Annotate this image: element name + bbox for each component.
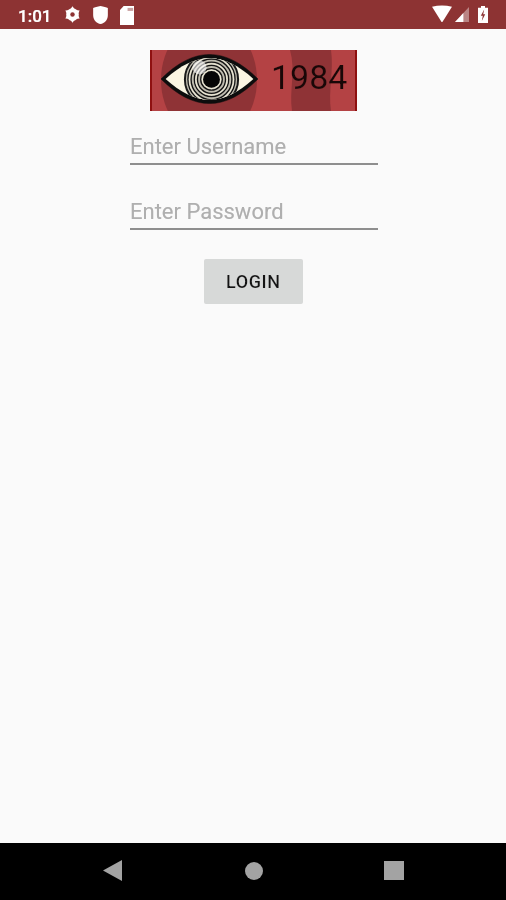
button[interactable]: Enter Password bbox=[130, 199, 378, 230]
button[interactable]: Back bbox=[83, 843, 142, 900]
button[interactable]: LOGIN bbox=[204, 259, 303, 304]
staticText: Enter Username bbox=[130, 134, 287, 160]
staticText: 1:01 bbox=[18, 6, 52, 26]
staticText: 1984 bbox=[271, 57, 348, 97]
button[interactable]: Home bbox=[224, 843, 283, 900]
button[interactable]: Enter Username bbox=[130, 134, 378, 165]
staticText: Enter Password bbox=[130, 199, 284, 225]
button[interactable]: Recents bbox=[364, 843, 423, 900]
staticText: LOGIN bbox=[226, 271, 281, 292]
